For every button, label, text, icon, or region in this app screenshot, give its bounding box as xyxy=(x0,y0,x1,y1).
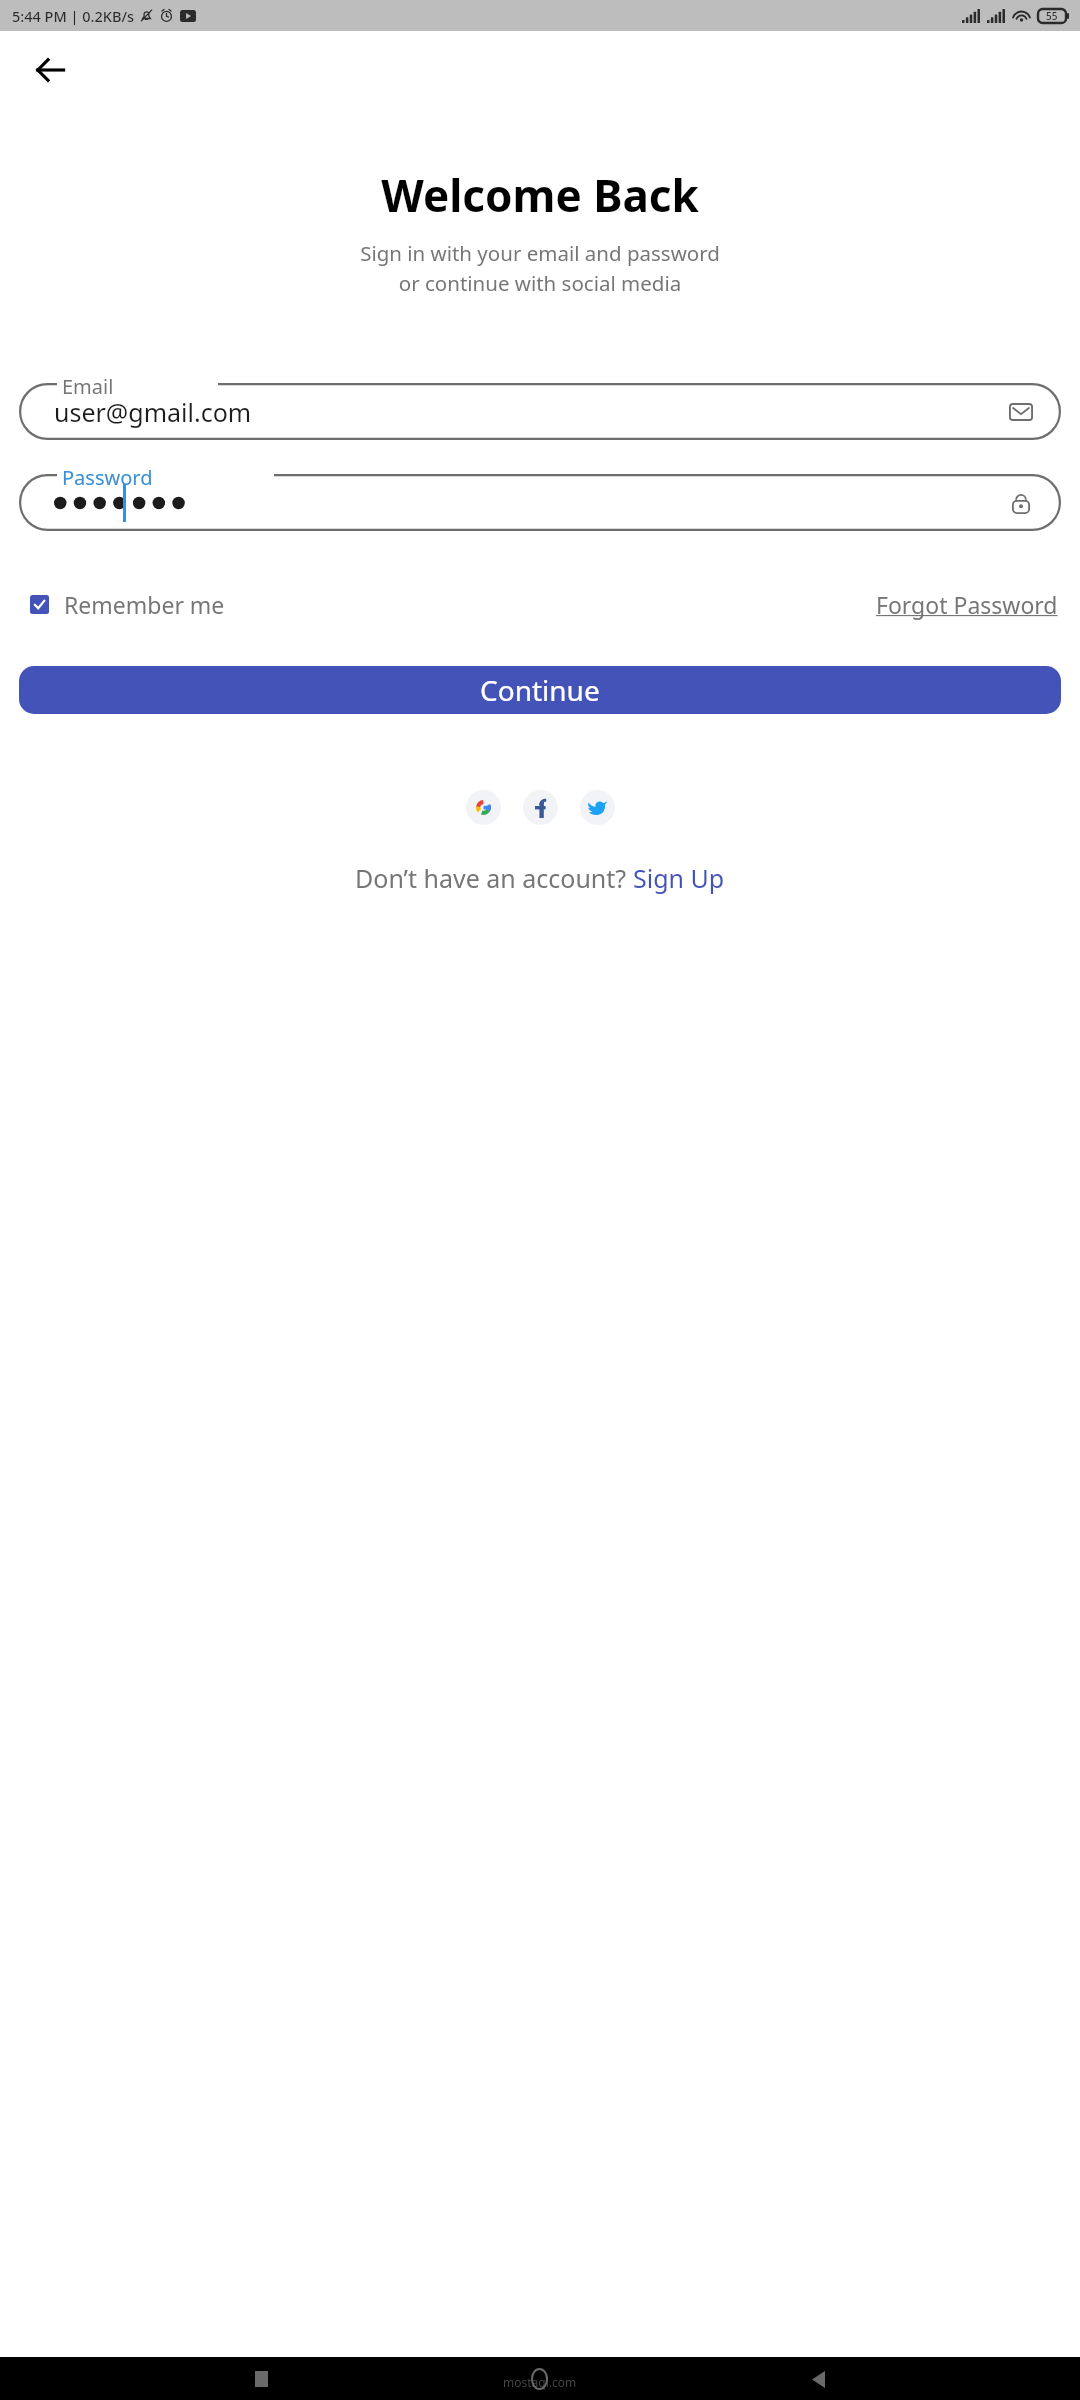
staticText: Remember me xyxy=(64,589,225,620)
staticText: Sign Up xyxy=(633,861,725,895)
staticText: Password xyxy=(62,464,153,491)
staticText: Continue xyxy=(480,671,600,709)
staticText: 55 xyxy=(1046,9,1058,23)
button[interactable]: Continue xyxy=(19,666,1061,714)
staticText: Forgot Password xyxy=(876,589,1058,620)
staticText: user@gmail.com xyxy=(54,395,252,429)
staticText: Sign in with your email and password or … xyxy=(360,239,720,297)
button[interactable]: Sign Up xyxy=(633,861,725,895)
staticText: Email xyxy=(62,373,114,400)
button[interactable]: Sign in with Twitter xyxy=(580,790,615,825)
staticText: Welcome Back xyxy=(381,165,699,225)
button[interactable]: Sign in with Google xyxy=(466,790,501,825)
button[interactable]: Back xyxy=(801,2362,835,2396)
staticText: 5:44 PM | 0.2KB/s xyxy=(12,6,135,26)
button[interactable]: Email xyxy=(1000,391,1042,433)
button[interactable]: Back xyxy=(26,45,76,95)
button[interactable]: Forgot Password xyxy=(876,589,1058,620)
button[interactable]: Email xyxy=(19,383,1061,440)
staticText: mostaql.com xyxy=(503,2374,577,2390)
button[interactable]: Password xyxy=(19,474,1061,531)
button[interactable]: Remember me xyxy=(30,589,225,620)
button[interactable]: Home xyxy=(522,2362,556,2396)
button[interactable]: Show password xyxy=(1000,482,1042,524)
staticText: Don’t have an account? xyxy=(355,861,633,895)
button[interactable]: Sign in with Facebook xyxy=(523,790,558,825)
button[interactable]: Recents xyxy=(244,2362,278,2396)
